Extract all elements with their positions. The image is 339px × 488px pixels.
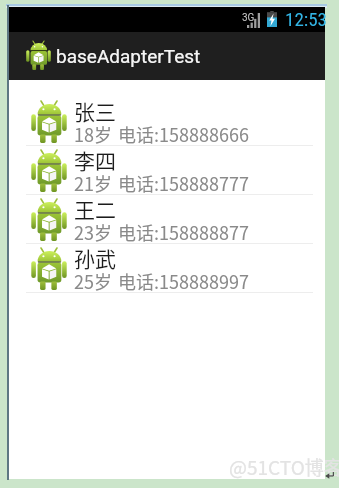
button[interactable]: 李四	[9, 146, 325, 194]
staticText: 3G	[242, 12, 255, 24]
button[interactable]: 孙武	[9, 244, 325, 292]
staticText: 孙武	[74, 243, 116, 273]
staticText: 电话:158888997	[118, 268, 249, 294]
staticText: baseAdapterTest	[56, 45, 201, 67]
staticText: 张三	[74, 96, 116, 126]
staticText: 18岁	[74, 121, 112, 147]
staticText: 电话:158888666	[118, 121, 249, 147]
button[interactable]: 王二	[9, 195, 325, 243]
staticText: 21岁	[74, 170, 112, 196]
staticText: 12:53	[285, 8, 327, 30]
staticText: @51CTO博客	[229, 453, 339, 481]
staticText: 电话:158888777	[118, 170, 249, 196]
staticText: 王二	[74, 194, 116, 224]
staticText: 25岁	[74, 268, 112, 294]
staticText: 电话:158888877	[118, 219, 249, 245]
staticText: 李四	[74, 145, 116, 175]
staticText: 23岁	[74, 219, 112, 245]
button[interactable]: 张三	[9, 97, 325, 145]
